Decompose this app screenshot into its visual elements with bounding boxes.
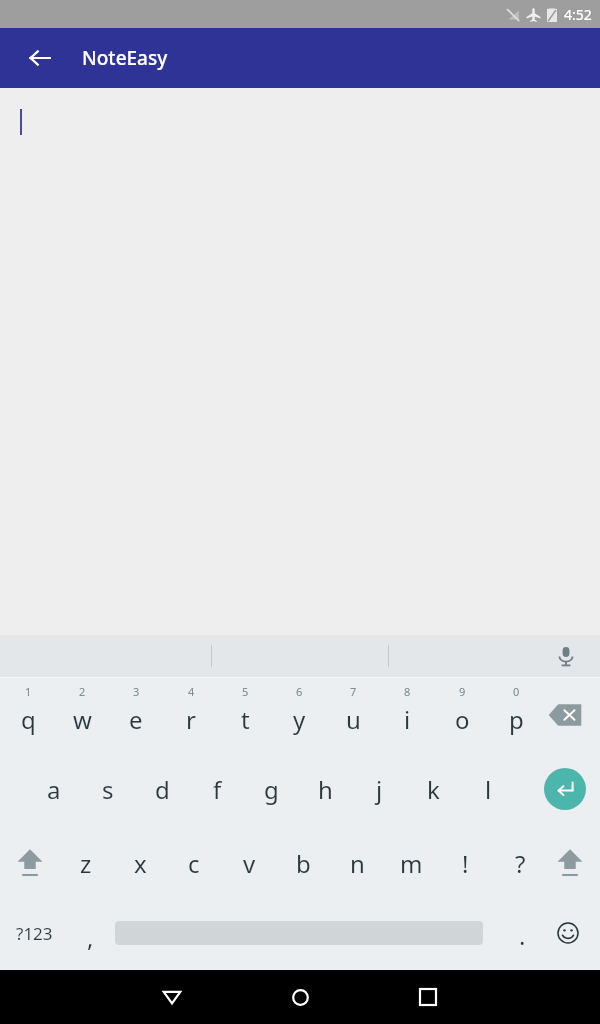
staticText: 2 (79, 684, 86, 699)
staticText: y (293, 703, 306, 736)
staticText: 6 (296, 684, 303, 699)
button[interactable]: 0 (489, 678, 543, 752)
staticText: ?123 (16, 922, 53, 945)
staticText: l (485, 773, 492, 806)
button[interactable]: c (167, 826, 221, 900)
staticText: x (134, 847, 147, 880)
staticText: e (129, 703, 143, 736)
button[interactable]: ?123 (4, 907, 64, 959)
button[interactable]: 6 (272, 678, 326, 752)
button[interactable]: f (190, 752, 244, 826)
staticText: ! (462, 847, 469, 880)
button[interactable]: Back (146, 971, 198, 1023)
button[interactable]: g (244, 752, 298, 826)
button[interactable]: Home (274, 971, 326, 1023)
staticText: s (102, 773, 114, 806)
staticText: q (21, 703, 36, 736)
staticText: w (73, 703, 92, 736)
button[interactable]: v (222, 826, 276, 900)
button[interactable]: ! (438, 826, 492, 900)
staticText: 4 (188, 684, 195, 699)
button[interactable]: ? (493, 826, 547, 900)
staticText: b (296, 847, 311, 880)
button[interactable]: s (81, 752, 135, 826)
staticText: i (404, 703, 411, 736)
staticText: p (509, 703, 524, 736)
staticText: r (186, 703, 196, 736)
button[interactable]: 8 (380, 678, 434, 752)
button[interactable]: 1 (1, 678, 55, 752)
button[interactable]: k (406, 752, 460, 826)
button[interactable]: Back (18, 36, 62, 80)
button[interactable]: Voice input (548, 638, 584, 674)
staticText: g (264, 773, 279, 806)
button[interactable]: 5 (218, 678, 272, 752)
staticText: 3 (133, 684, 140, 699)
button[interactable]: d (135, 752, 189, 826)
staticText: j (376, 773, 383, 806)
button[interactable]: Enter (544, 768, 586, 810)
button[interactable]: x (113, 826, 167, 900)
staticText: v (243, 847, 256, 880)
button[interactable]: . (500, 907, 544, 959)
staticText: 5 (242, 684, 249, 699)
staticText: . (519, 919, 526, 952)
staticText: 0 (513, 684, 520, 699)
staticText: k (427, 773, 440, 806)
staticText: 8 (404, 684, 411, 699)
staticText: c (188, 847, 200, 880)
staticText: o (455, 703, 470, 736)
button[interactable]: m (384, 826, 438, 900)
button[interactable]: 9 (435, 678, 489, 752)
button[interactable]: , (68, 907, 112, 959)
button[interactable]: l (461, 752, 515, 826)
staticText: u (346, 703, 361, 736)
button[interactable]: j (352, 752, 406, 826)
staticText: f (213, 773, 222, 806)
staticText: n (350, 847, 365, 880)
button[interactable]: Shift (6, 839, 54, 887)
button[interactable]: 3 (109, 678, 163, 752)
staticText: m (400, 847, 423, 880)
staticText: d (155, 773, 170, 806)
button[interactable]: 7 (326, 678, 380, 752)
button[interactable]: n (330, 826, 384, 900)
button[interactable]: Recent apps (402, 971, 454, 1023)
button[interactable]: Backspace (540, 690, 590, 740)
staticText: NoteEasy (82, 45, 168, 71)
staticText: h (318, 773, 333, 806)
staticText: 1 (25, 684, 32, 699)
staticText: a (47, 773, 61, 806)
staticText: , (87, 921, 94, 954)
button[interactable]: z (59, 826, 113, 900)
button[interactable]: 4 (164, 678, 218, 752)
button[interactable]: h (298, 752, 352, 826)
staticText: 4:52 (564, 5, 592, 24)
staticText: z (80, 847, 92, 880)
staticText: ? (515, 847, 526, 880)
staticText: t (241, 703, 250, 736)
button[interactable]: Shift (546, 839, 594, 887)
staticText: 9 (459, 684, 466, 699)
button[interactable]: a (27, 752, 81, 826)
staticText: 7 (350, 684, 357, 699)
button[interactable]: Emoji (546, 911, 590, 955)
button[interactable]: b (276, 826, 330, 900)
button[interactable]: 2 (55, 678, 109, 752)
